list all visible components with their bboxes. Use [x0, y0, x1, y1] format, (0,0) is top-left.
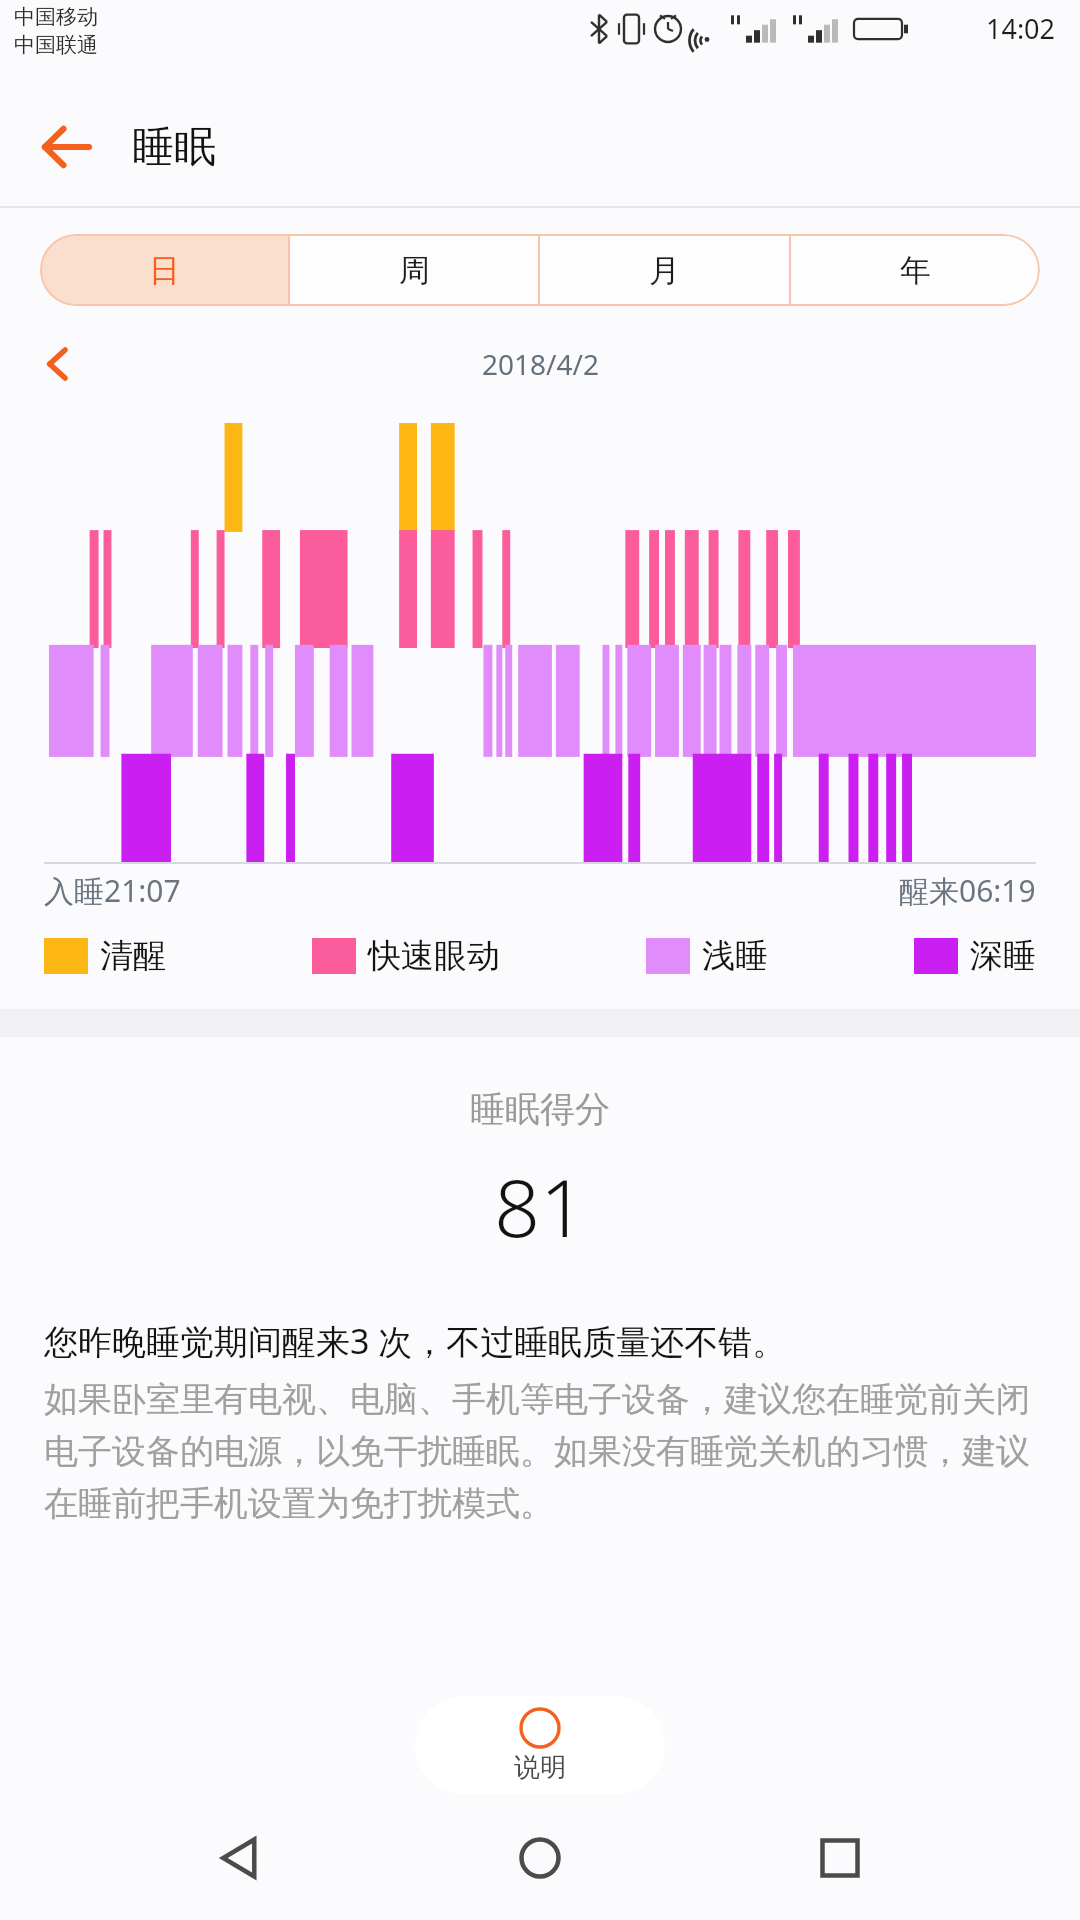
staticText: 年 — [900, 251, 931, 290]
staticText: 浅睡 — [702, 935, 768, 977]
staticText: 中国联通 — [14, 32, 98, 58]
button[interactable]: 清醒 — [44, 935, 166, 977]
button[interactable]: 深睡 — [914, 935, 1036, 977]
staticText: 深睡 — [970, 935, 1036, 977]
staticText: 周 — [399, 251, 430, 290]
button[interactable]: 周 — [290, 234, 538, 306]
staticText: 睡眠得分 — [0, 1087, 1080, 1131]
staticText: 清醒 — [100, 935, 166, 977]
button[interactable]: Home — [480, 1798, 600, 1918]
button[interactable]: 说明 — [415, 1696, 665, 1794]
staticText: 中国移动 — [14, 4, 98, 30]
button[interactable]: Back — [30, 111, 102, 183]
staticText: 睡眠 — [132, 121, 216, 174]
button[interactable]: Recents — [780, 1798, 900, 1918]
staticText: 月 — [649, 251, 680, 290]
staticText: 2018/4/2 — [482, 345, 599, 383]
button[interactable]: 日 — [40, 234, 288, 306]
staticText: 日 — [149, 251, 180, 290]
button[interactable]: 年 — [791, 234, 1040, 306]
button[interactable]: Previous day — [30, 336, 86, 392]
staticText: 您昨晚睡觉期间醒来3 次，不过睡眠质量还不错。 — [44, 1318, 1036, 1364]
button[interactable]: Back — [180, 1798, 300, 1918]
button[interactable]: 浅睡 — [646, 935, 768, 977]
staticText: 14:02 — [986, 10, 1056, 47]
staticText: 醒来06:19 — [899, 870, 1036, 911]
button[interactable]: 月 — [540, 234, 789, 306]
button[interactable]: 快速眼动 — [312, 935, 500, 977]
staticText: 如果卧室里有电视、电脑、手机等电子设备，建议您在睡觉前关闭电子设备的电源，以免干… — [44, 1378, 1036, 1525]
staticText: 入睡21:07 — [44, 870, 181, 911]
staticText: 81 — [0, 1151, 1080, 1260]
staticText: 说明 — [514, 1751, 566, 1784]
staticText: 快速眼动 — [368, 935, 500, 977]
